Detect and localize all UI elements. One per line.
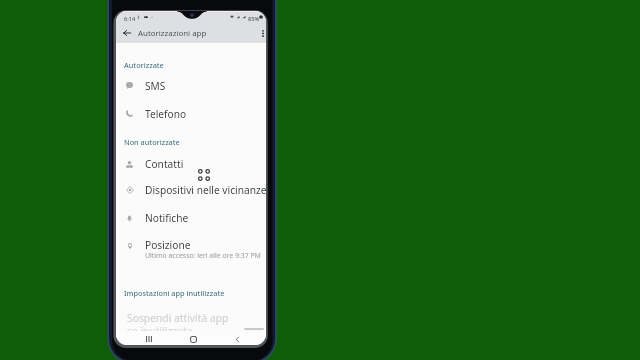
button[interactable]: SMS (116, 73, 266, 99)
staticText: Notifiche (145, 211, 189, 225)
button[interactable]: Dispositivi nelle vicinanze (116, 177, 266, 203)
staticText: Impostazioni app inutilizzate (124, 288, 225, 298)
staticText: Autorizzate (124, 60, 164, 70)
button[interactable]: More options (255, 25, 266, 41)
staticText: 85% (248, 15, 260, 23)
staticText: Non autorizzate (124, 137, 180, 147)
button[interactable]: Home (186, 332, 200, 345)
button[interactable]: Notifiche (116, 205, 266, 231)
staticText: Contatti (145, 157, 184, 171)
staticText: SMS (145, 79, 166, 93)
staticText: se inutilizzata (127, 324, 193, 338)
button[interactable]: Recents (142, 332, 156, 345)
staticText: Posizione (145, 238, 191, 252)
staticText: Telefono (145, 107, 187, 121)
button[interactable]: Posizione (116, 233, 266, 259)
staticText: 6:14 (124, 15, 136, 23)
staticText: Autorizzazioni app (138, 28, 207, 39)
button[interactable]: Telefono (116, 101, 266, 127)
button[interactable]: Back (230, 332, 244, 345)
button[interactable]: Contatti (116, 151, 266, 177)
button[interactable]: Back (119, 25, 135, 41)
staticText: Dispositivi nelle vicinanze (145, 183, 266, 197)
staticText: Sospendi attività app (127, 311, 229, 325)
staticText: Ultimo accesso: ieri alle ore 9:37 PM (145, 251, 261, 260)
